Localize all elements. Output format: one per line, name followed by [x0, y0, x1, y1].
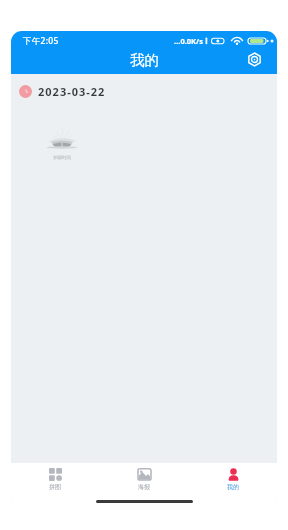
staticText: …0.0K/s [174, 36, 203, 46]
button[interactable]: 海报 [127, 465, 161, 493]
button[interactable]: Photo 拍摄时间 [46, 126, 78, 161]
staticText: 2023-03-22 [38, 84, 106, 99]
button[interactable]: 我的 [216, 465, 250, 493]
staticText: 拼图 [49, 483, 61, 491]
staticText: 我的 [227, 483, 239, 491]
button[interactable]: 拼图 [38, 465, 72, 493]
staticText: 海报 [138, 483, 150, 491]
staticText: 下午2:05 [23, 35, 59, 47]
button[interactable]: Settings [244, 49, 264, 69]
staticText: 我的 [130, 51, 159, 69]
staticText: 拍摄时间 [53, 155, 71, 161]
